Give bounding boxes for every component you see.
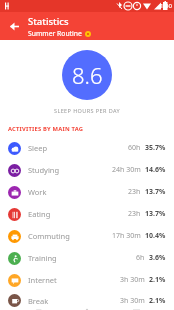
staticText: Break <box>28 296 49 306</box>
button[interactable]: Studying <box>0 159 174 181</box>
staticText: 23h <box>128 209 141 219</box>
button[interactable]: Work <box>0 181 174 203</box>
staticText: Summer Routine <box>28 29 82 38</box>
staticText: 1:30 <box>160 2 172 10</box>
staticText: 17h 30m <box>112 231 141 241</box>
staticText: 24h 30m <box>112 165 141 175</box>
staticText: 3h 30m <box>120 296 145 306</box>
button[interactable]: Eating <box>0 203 174 225</box>
staticText: 8.6 <box>72 60 103 90</box>
staticText: Work <box>28 187 47 197</box>
staticText: 23h <box>128 187 141 197</box>
staticText: SLEEP HOURS PER DAY <box>0 107 174 114</box>
staticText: Internet <box>28 275 57 285</box>
button[interactable]: Internet <box>0 269 174 291</box>
staticText: 3h 30m <box>120 275 145 285</box>
staticText: ACTIVITIES BY MAIN TAG <box>8 125 84 133</box>
staticText: 2.1% <box>149 275 166 285</box>
staticText: 6h <box>136 253 145 263</box>
button[interactable]: Training <box>0 247 174 269</box>
staticText: 60h <box>128 143 141 153</box>
staticText: 13.7% <box>145 187 166 197</box>
button[interactable]: Commuting <box>0 225 174 247</box>
staticText: 2.1% <box>149 296 166 306</box>
staticText: 35.7% <box>145 143 166 153</box>
staticText: Studying <box>28 165 60 175</box>
button[interactable]: Sleep <box>0 137 174 159</box>
staticText: 10.4% <box>145 231 166 241</box>
button[interactable]: Break <box>0 291 174 310</box>
staticText: Training <box>28 253 57 263</box>
staticText: Sleep <box>28 143 48 153</box>
staticText: Eating <box>28 209 51 219</box>
staticText: Statistics <box>28 15 69 28</box>
staticText: 3.6% <box>149 253 166 263</box>
staticText: Commuting <box>28 231 70 241</box>
button[interactable]: Back <box>3 15 25 37</box>
staticText: 13.7% <box>145 209 166 219</box>
button[interactable]: 8.6 <box>62 50 112 100</box>
staticText: 14.6% <box>145 165 166 175</box>
